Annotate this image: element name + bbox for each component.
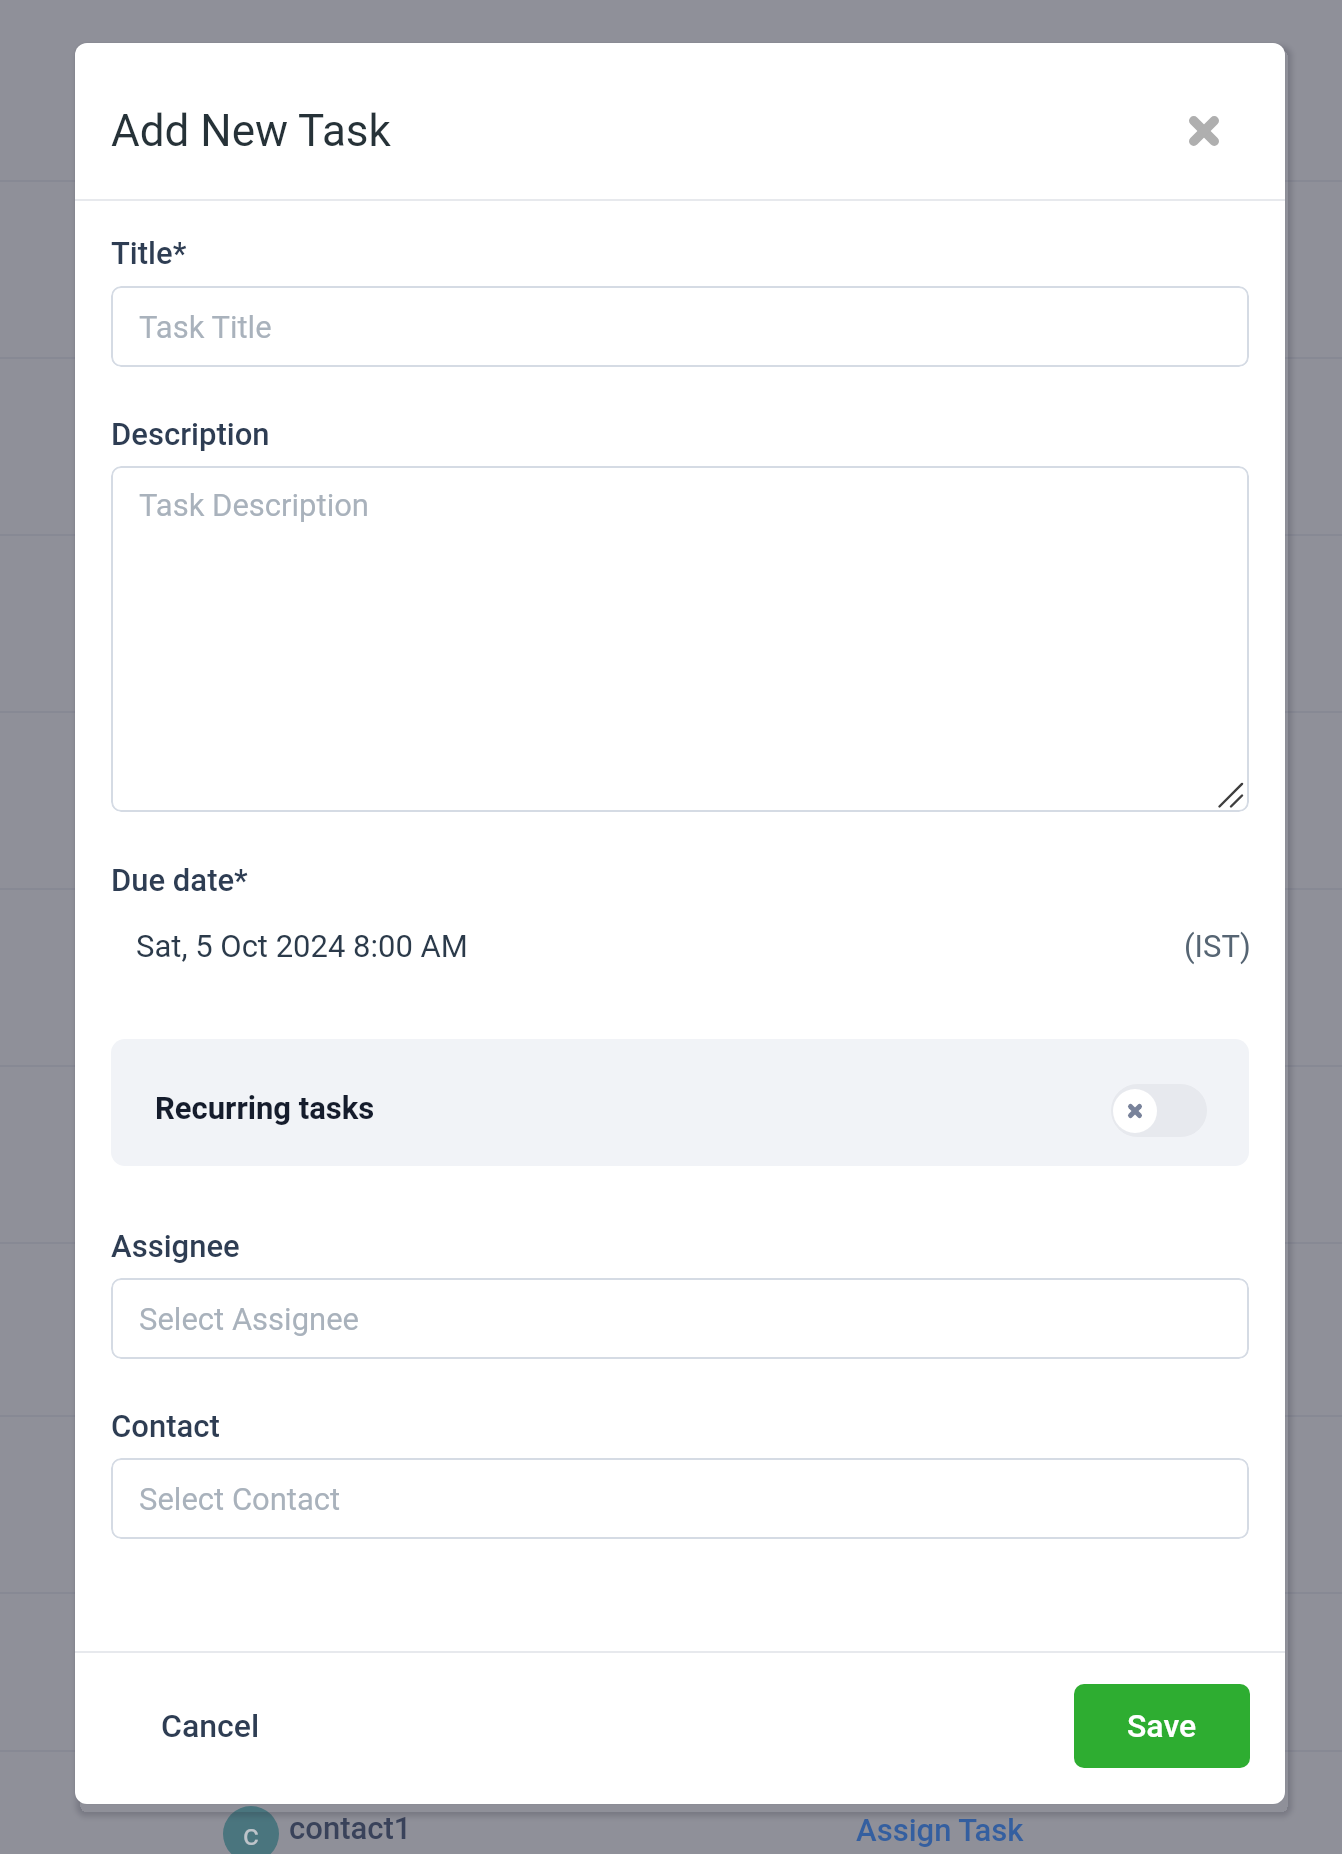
staticText: Description bbox=[111, 416, 270, 452]
staticText: c bbox=[243, 1817, 259, 1852]
staticText: Select Contact bbox=[139, 1481, 341, 1517]
button[interactable]: Cancel bbox=[139, 1692, 282, 1766]
button[interactable]: Save bbox=[1074, 1684, 1250, 1768]
staticText: Task Title bbox=[139, 309, 272, 345]
button[interactable]: Select Assignee bbox=[111, 1278, 1249, 1359]
button[interactable]: Close bbox=[1172, 99, 1236, 163]
button[interactable]: Sat, 5 Oct 2024 8:00 AM bbox=[75, 920, 1285, 968]
staticText: Cancel bbox=[161, 1707, 260, 1745]
staticText: Recurring tasks bbox=[155, 1090, 375, 1126]
button[interactable]: Recurring tasks bbox=[111, 1039, 1249, 1166]
staticText: Assignee bbox=[111, 1228, 240, 1264]
staticText: Contact bbox=[111, 1408, 220, 1444]
staticText: Save bbox=[1127, 1707, 1197, 1745]
button[interactable]: Task Title bbox=[111, 286, 1249, 367]
staticText: Select Assignee bbox=[139, 1301, 360, 1337]
staticText: (IST) bbox=[1184, 928, 1251, 964]
staticText: Due date* bbox=[111, 862, 248, 898]
staticText: Add New Task bbox=[111, 105, 391, 157]
button[interactable]: Assign Task bbox=[856, 1806, 1024, 1848]
staticText: Assign Task bbox=[856, 1812, 1024, 1848]
button[interactable]: Task Description bbox=[111, 466, 1249, 812]
staticText: Sat, 5 Oct 2024 8:00 AM bbox=[136, 928, 468, 964]
staticText: Task Description bbox=[139, 487, 369, 523]
button[interactable]: Recurring tasks toggle bbox=[1111, 1084, 1207, 1137]
staticText: Title* bbox=[111, 235, 187, 271]
button[interactable]: Select Contact bbox=[111, 1458, 1249, 1539]
staticText: contact1 bbox=[289, 1810, 412, 1846]
